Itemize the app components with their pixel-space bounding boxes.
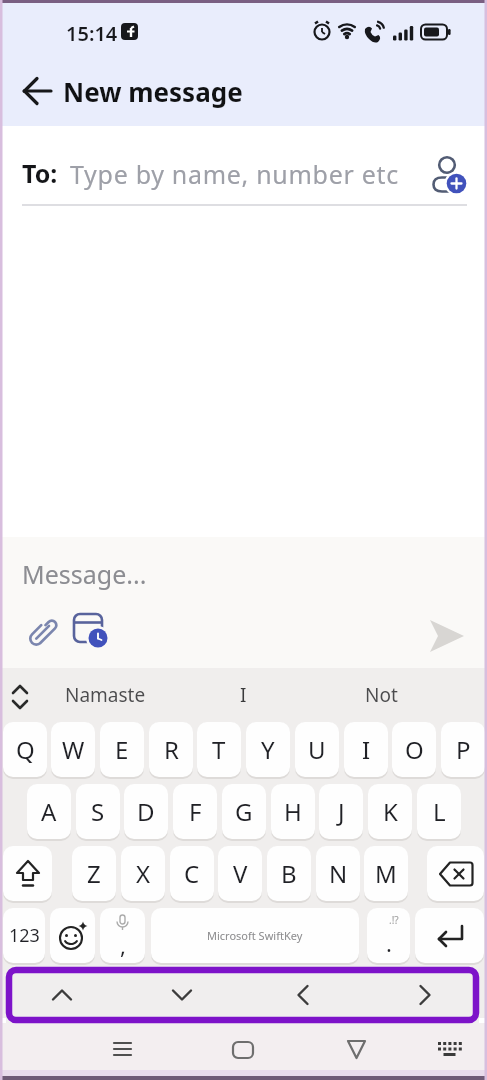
button[interactable]: F bbox=[173, 784, 217, 839]
button[interactable]: O bbox=[392, 722, 436, 777]
button[interactable]: Namaste bbox=[40, 668, 170, 722]
staticText: , bbox=[120, 930, 126, 960]
staticText: New message bbox=[63, 74, 243, 109]
staticText: R bbox=[164, 733, 179, 766]
staticText: . bbox=[386, 928, 392, 958]
staticText: F bbox=[189, 795, 202, 828]
button[interactable]: C bbox=[170, 846, 214, 901]
staticText: 15:14 bbox=[66, 20, 118, 47]
staticText: I bbox=[362, 733, 371, 766]
staticText: Z bbox=[87, 857, 101, 890]
button[interactable]: G bbox=[222, 784, 266, 839]
button[interactable]: Not bbox=[316, 668, 446, 722]
button[interactable] bbox=[436, 1038, 466, 1064]
button[interactable]: U bbox=[295, 722, 339, 777]
button[interactable]: B bbox=[267, 846, 311, 901]
button[interactable]: 123 bbox=[3, 908, 45, 963]
staticText: C bbox=[184, 857, 200, 890]
button[interactable] bbox=[332, 1032, 380, 1068]
staticText: P bbox=[456, 733, 471, 766]
button[interactable]: R bbox=[149, 722, 193, 777]
button[interactable]: A bbox=[27, 784, 71, 839]
staticText: Y bbox=[261, 733, 275, 766]
staticText: L bbox=[433, 795, 446, 828]
button[interactable] bbox=[23, 77, 53, 105]
staticText: E bbox=[115, 733, 129, 766]
staticText: M bbox=[375, 857, 397, 890]
staticText: G bbox=[235, 795, 253, 828]
button[interactable]: K bbox=[368, 784, 412, 839]
staticText: B bbox=[281, 857, 297, 890]
button[interactable]: Z bbox=[72, 846, 116, 901]
button[interactable]: .!? bbox=[367, 908, 410, 963]
staticText: To: bbox=[22, 156, 58, 190]
button[interactable] bbox=[219, 1032, 267, 1068]
button[interactable]: V bbox=[218, 846, 262, 901]
button[interactable] bbox=[400, 973, 450, 1017]
button[interactable] bbox=[415, 908, 484, 963]
staticText: J bbox=[338, 795, 345, 828]
staticText: I bbox=[240, 682, 247, 708]
staticText: H bbox=[284, 795, 302, 828]
staticText: .!? bbox=[389, 913, 399, 927]
button[interactable] bbox=[0, 140, 487, 204]
staticText: A bbox=[41, 795, 57, 828]
staticText: 123 bbox=[9, 923, 40, 948]
button[interactable] bbox=[427, 846, 484, 901]
button[interactable]: T bbox=[197, 722, 241, 777]
button[interactable]: X bbox=[121, 846, 165, 901]
button[interactable]: N bbox=[316, 846, 360, 901]
button[interactable]: L bbox=[417, 784, 461, 839]
staticText: W bbox=[62, 733, 85, 766]
button[interactable] bbox=[50, 908, 95, 963]
button[interactable] bbox=[3, 846, 52, 901]
button[interactable] bbox=[8, 682, 32, 712]
staticText: X bbox=[136, 857, 151, 890]
staticText: Microsoft SwiftKey bbox=[207, 928, 303, 943]
staticText: K bbox=[383, 795, 398, 828]
staticText: Type by name, number etc bbox=[70, 157, 399, 191]
button[interactable]: D bbox=[124, 784, 168, 839]
button[interactable]: Q bbox=[3, 722, 47, 777]
button[interactable] bbox=[24, 614, 62, 654]
button[interactable]: W bbox=[51, 722, 95, 777]
staticText: O bbox=[405, 733, 424, 766]
button[interactable]: , bbox=[100, 908, 145, 963]
button[interactable]: Y bbox=[246, 722, 290, 777]
staticText: N bbox=[329, 857, 348, 890]
button[interactable] bbox=[37, 973, 87, 1017]
button[interactable] bbox=[72, 610, 112, 652]
button[interactable]: E bbox=[100, 722, 144, 777]
button[interactable] bbox=[98, 1032, 146, 1068]
button[interactable] bbox=[430, 150, 470, 196]
staticText: Message... bbox=[22, 557, 147, 591]
button[interactable]: I bbox=[344, 722, 388, 777]
button[interactable]: J bbox=[319, 784, 363, 839]
button[interactable] bbox=[278, 973, 328, 1017]
button[interactable]: Microsoft SwiftKey bbox=[151, 908, 359, 963]
button[interactable] bbox=[428, 618, 466, 656]
staticText: Q bbox=[16, 733, 35, 766]
staticText: S bbox=[91, 795, 105, 828]
button[interactable]: H bbox=[271, 784, 315, 839]
staticText: V bbox=[233, 857, 248, 890]
button[interactable]: M bbox=[364, 846, 408, 901]
button[interactable]: P bbox=[441, 722, 485, 777]
staticText: Namaste bbox=[65, 682, 146, 708]
staticText: D bbox=[137, 795, 155, 828]
button[interactable]: I bbox=[180, 668, 306, 722]
staticText: T bbox=[212, 733, 226, 766]
staticText: Not bbox=[365, 682, 398, 708]
button[interactable] bbox=[157, 973, 207, 1017]
staticText: U bbox=[308, 733, 326, 766]
button[interactable]: S bbox=[76, 784, 120, 839]
